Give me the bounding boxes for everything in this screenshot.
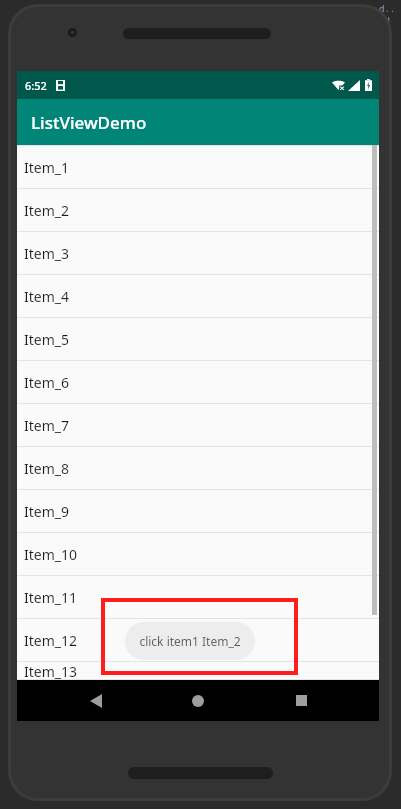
staticText: Item_12 [24,631,78,650]
button[interactable]: Item_3 [17,232,379,275]
button[interactable]: Item_13 [17,662,379,680]
staticText: Item_8 [24,459,70,478]
button[interactable]: Home [174,680,222,721]
staticText: Item_7 [24,416,70,435]
button[interactable]: Item_4 [17,275,379,318]
button[interactable]: Back [72,680,120,721]
staticText: Item_9 [24,502,70,521]
button[interactable]: Item_12 [17,619,379,662]
staticText: Item_1 [24,158,70,177]
staticText: 6:52 [25,78,47,93]
button[interactable]: Item_11 [17,576,379,619]
button[interactable]: Item_9 [17,490,379,533]
staticText: Item_10 [24,545,78,564]
staticText: Item_13 [24,662,78,680]
button[interactable]: Item_2 [17,189,379,232]
button[interactable]: Item_6 [17,361,379,404]
staticText: Item_3 [24,244,70,263]
button[interactable]: Item_10 [17,533,379,576]
staticText: Item_5 [24,330,70,349]
staticText: ListViewDemo [31,111,147,134]
staticText: Item_2 [24,201,70,220]
staticText: d.. ad [379,2,401,26]
button[interactable]: Item_5 [17,318,379,361]
staticText: Item_6 [24,373,70,392]
button[interactable]: Item_1 [17,146,379,189]
staticText: Item_4 [24,287,70,306]
staticText: click item1 Item_2 [139,633,241,649]
staticText: Item_11 [24,588,78,607]
button[interactable]: Item_7 [17,404,379,447]
button[interactable]: Recent apps [277,680,325,721]
button[interactable]: Item_8 [17,447,379,490]
